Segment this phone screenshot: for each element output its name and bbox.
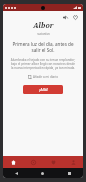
staticText: sustantivo (37, 32, 50, 36)
button[interactable]: Home (29, 168, 56, 178)
staticText: Añadir a mi diario (33, 75, 59, 79)
button[interactable]: Añadir a mi diario (25, 74, 62, 80)
staticText: ¡Allá! (39, 87, 48, 92)
button[interactable]: Listen (61, 13, 69, 21)
staticText: Albor (33, 21, 54, 31)
staticText: Primera luz del día, antes de salir el S… (8, 41, 78, 53)
staticText: Alumbraba el tejado con su tenue resplan… (10, 58, 76, 70)
button[interactable]: Profile (63, 156, 83, 168)
button[interactable]: Home (3, 156, 23, 168)
button[interactable]: Explore (23, 156, 43, 168)
button[interactable]: Recents (56, 168, 83, 178)
button[interactable]: Favorite (71, 13, 79, 21)
button[interactable]: Favorites (43, 156, 63, 168)
button[interactable]: ¡Allá! (23, 85, 63, 94)
button[interactable]: Back (3, 168, 29, 178)
